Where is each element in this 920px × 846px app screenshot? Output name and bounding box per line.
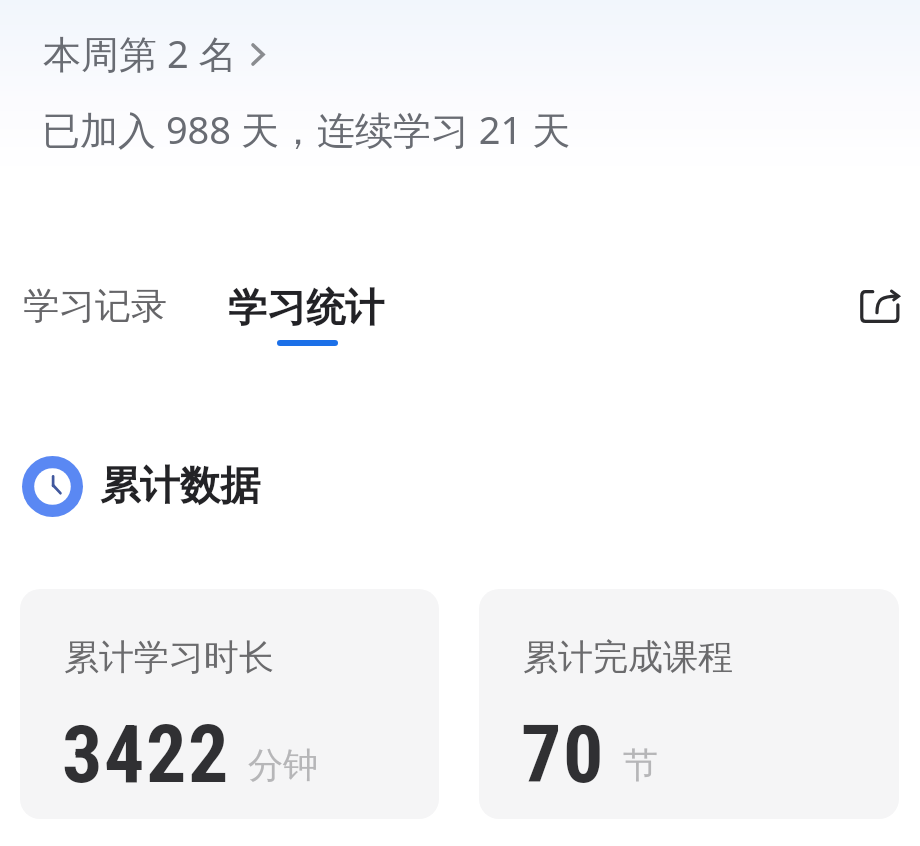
staticText: 已加入 988 天，连续学习 21 天	[42, 103, 571, 155]
staticText: 累计完成课程	[523, 635, 733, 679]
staticText: 70	[521, 708, 606, 802]
staticText: 学习记录	[23, 283, 167, 328]
button[interactable]: 学习统计	[222, 278, 390, 351]
staticText: 累计数据	[100, 460, 260, 510]
staticText: 累计学习时长	[64, 635, 274, 679]
button[interactable]: 累计学习时长	[20, 589, 439, 819]
button[interactable]: 学习记录	[18, 278, 172, 333]
staticText: 学习统计	[228, 283, 384, 332]
button[interactable]: 累计完成课程	[479, 589, 899, 819]
staticText: 3422	[62, 708, 231, 802]
staticText: 节	[623, 743, 658, 787]
button[interactable]: 本周第 2 名	[43, 27, 265, 79]
staticText: 本周第 2 名	[43, 27, 237, 79]
staticText: 分钟	[248, 743, 318, 787]
button[interactable]: Share	[848, 274, 912, 338]
